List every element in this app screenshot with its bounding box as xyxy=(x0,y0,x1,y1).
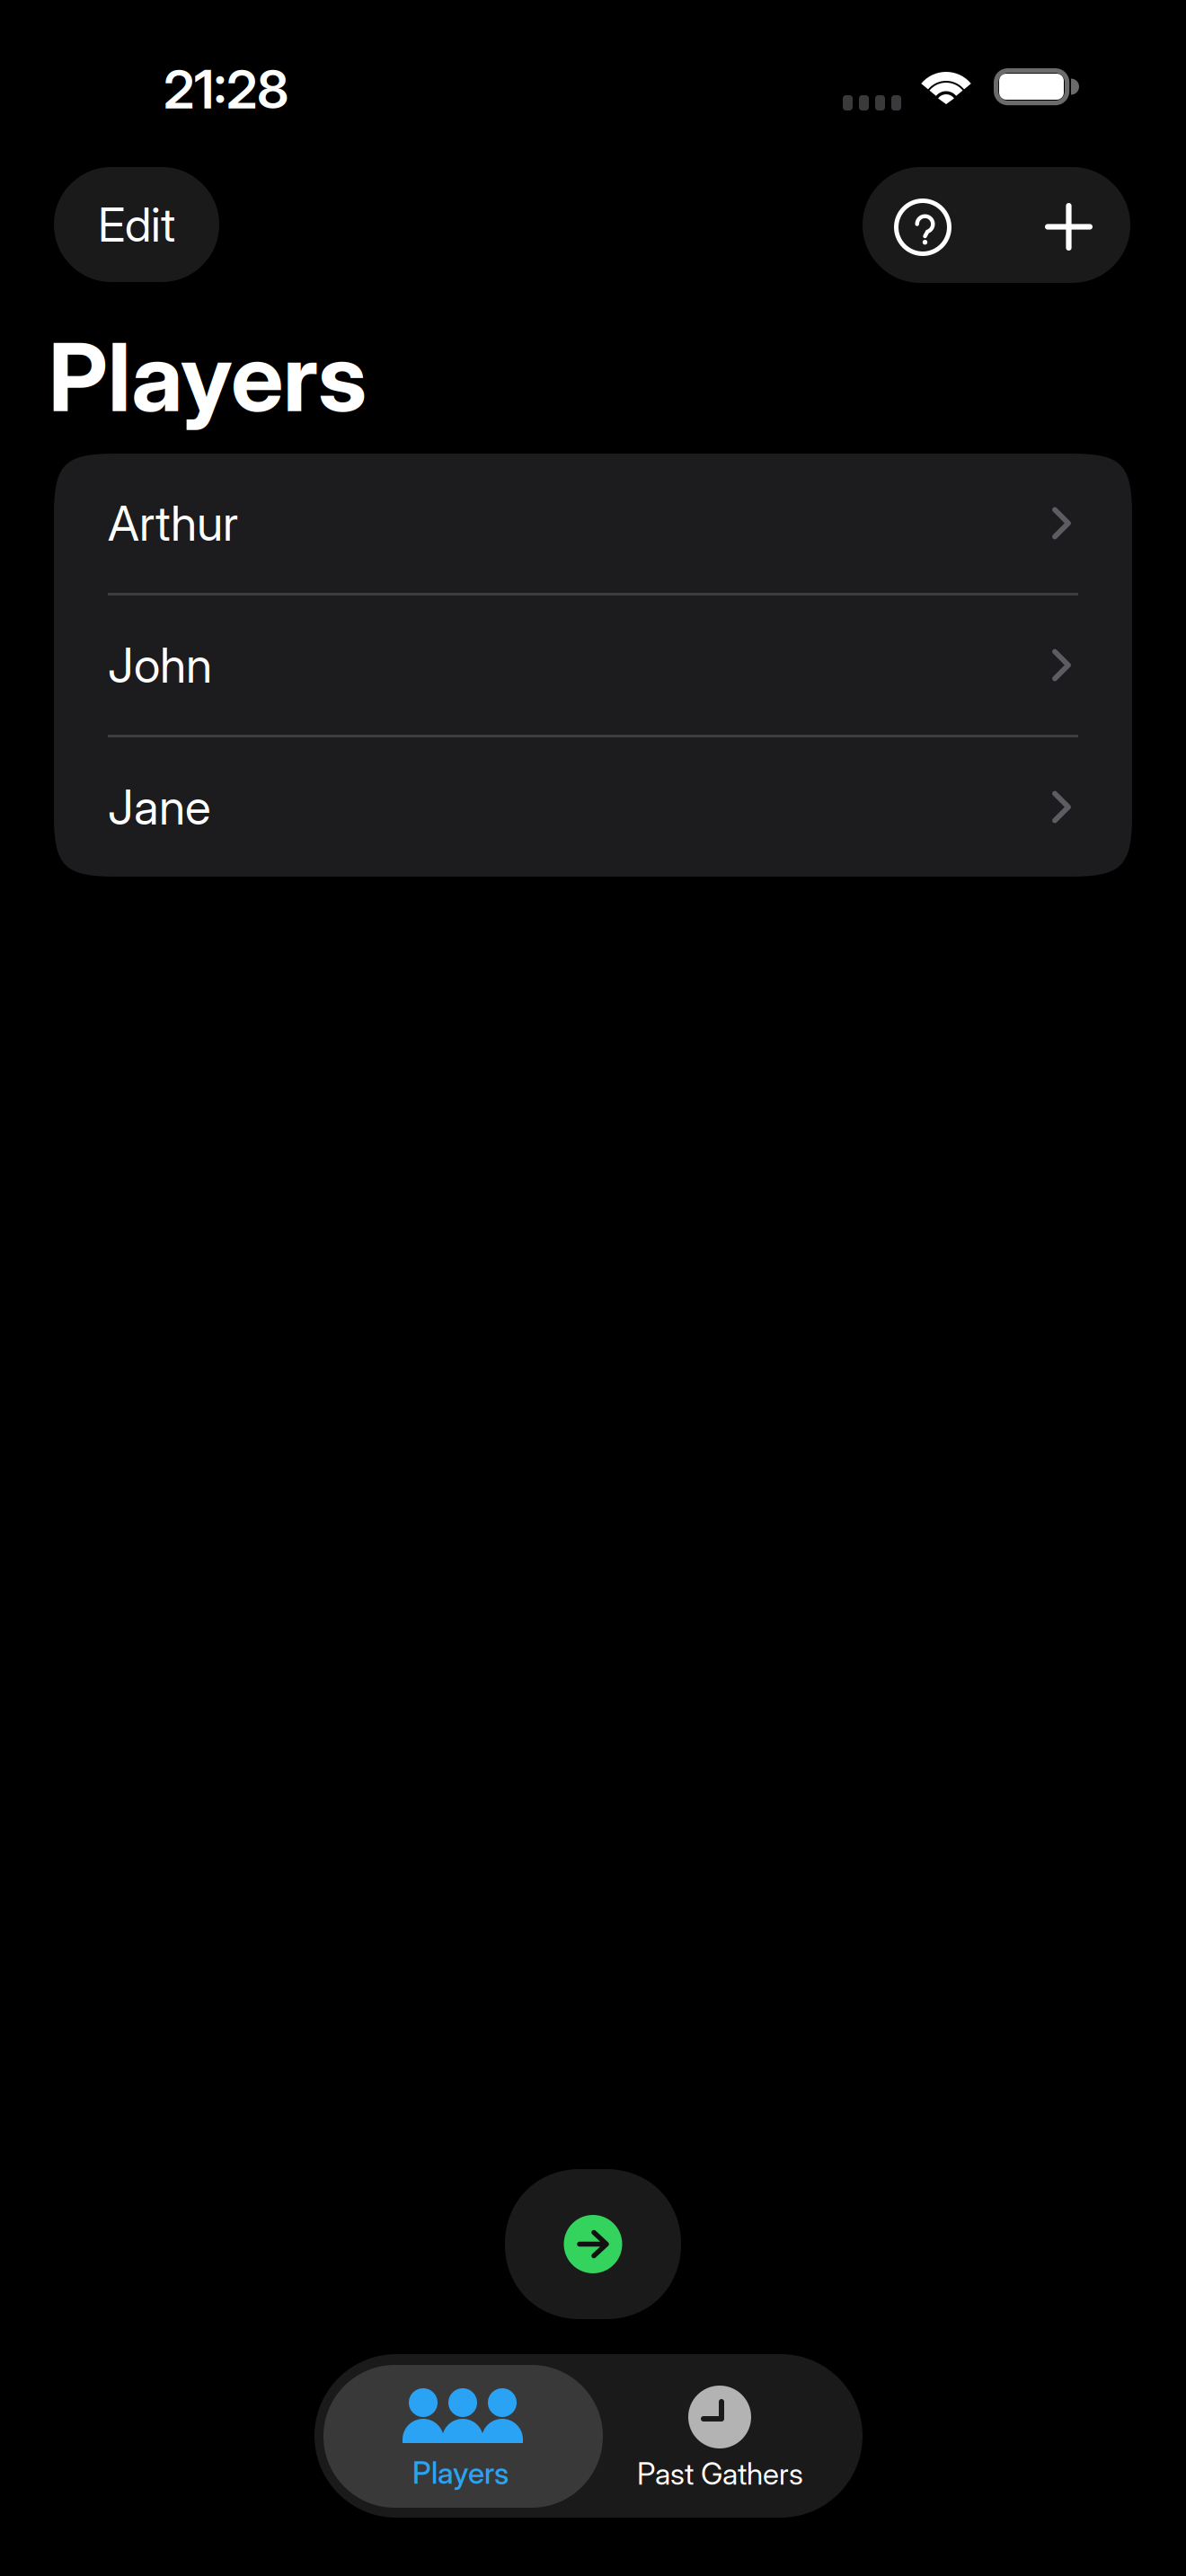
staticText: Past Gathers xyxy=(637,2456,803,2492)
button[interactable]: John xyxy=(54,595,1132,735)
staticText: Jane xyxy=(108,778,211,836)
staticText: John xyxy=(108,636,212,694)
staticText: Edit xyxy=(98,196,175,253)
button[interactable]: Players xyxy=(323,2365,603,2508)
staticText: Players xyxy=(49,321,367,434)
staticText: 21:28 xyxy=(164,57,288,121)
button[interactable]: Jane xyxy=(54,737,1132,877)
staticText: Players xyxy=(412,2455,509,2491)
button[interactable]: Edit xyxy=(54,167,219,282)
button[interactable]: Start gather xyxy=(505,2169,681,2319)
staticText: Arthur xyxy=(108,494,238,552)
button[interactable]: Arthur xyxy=(54,454,1132,593)
button[interactable]: Help xyxy=(863,167,996,283)
button[interactable]: Past Gathers xyxy=(603,2365,854,2508)
button[interactable]: Add player xyxy=(996,167,1130,283)
